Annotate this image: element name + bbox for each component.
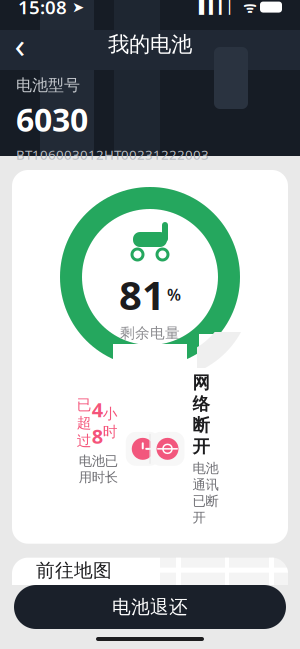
- staticText: 81: [119, 268, 165, 321]
- button[interactable]: 前往地图: [12, 558, 288, 649]
- staticText: 电池已用时长: [79, 453, 118, 486]
- staticText: 已超过: [77, 396, 92, 450]
- staticText: 查看电池位置: [36, 586, 150, 609]
- staticText: ▌▍▎▏: [199, 0, 239, 15]
- staticText: 剩余电量: [120, 324, 180, 342]
- staticText: BT106003012HT00231222003: [16, 146, 209, 163]
- staticText: 48: [92, 396, 103, 449]
- staticText: 前往地图: [36, 559, 112, 582]
- staticText: %: [167, 284, 181, 305]
- staticText: 我的电池: [108, 31, 192, 58]
- staticText: 6030: [16, 98, 88, 141]
- staticText: 电池退还: [112, 595, 188, 618]
- staticText: ‹: [14, 21, 25, 67]
- staticText: 电池通讯已断开: [192, 460, 218, 526]
- staticText: 电池型号: [16, 75, 80, 95]
- staticText: ➤: [67, 0, 84, 15]
- staticText: 小时: [103, 405, 118, 441]
- button[interactable]: 返回: [0, 24, 40, 64]
- staticText: 15:08: [18, 0, 67, 19]
- staticText: 网络断开: [192, 372, 209, 457]
- staticText: 查看位置: [58, 627, 126, 648]
- button[interactable]: 电池退还: [14, 585, 286, 629]
- staticText: ᯤ: [239, 0, 260, 17]
